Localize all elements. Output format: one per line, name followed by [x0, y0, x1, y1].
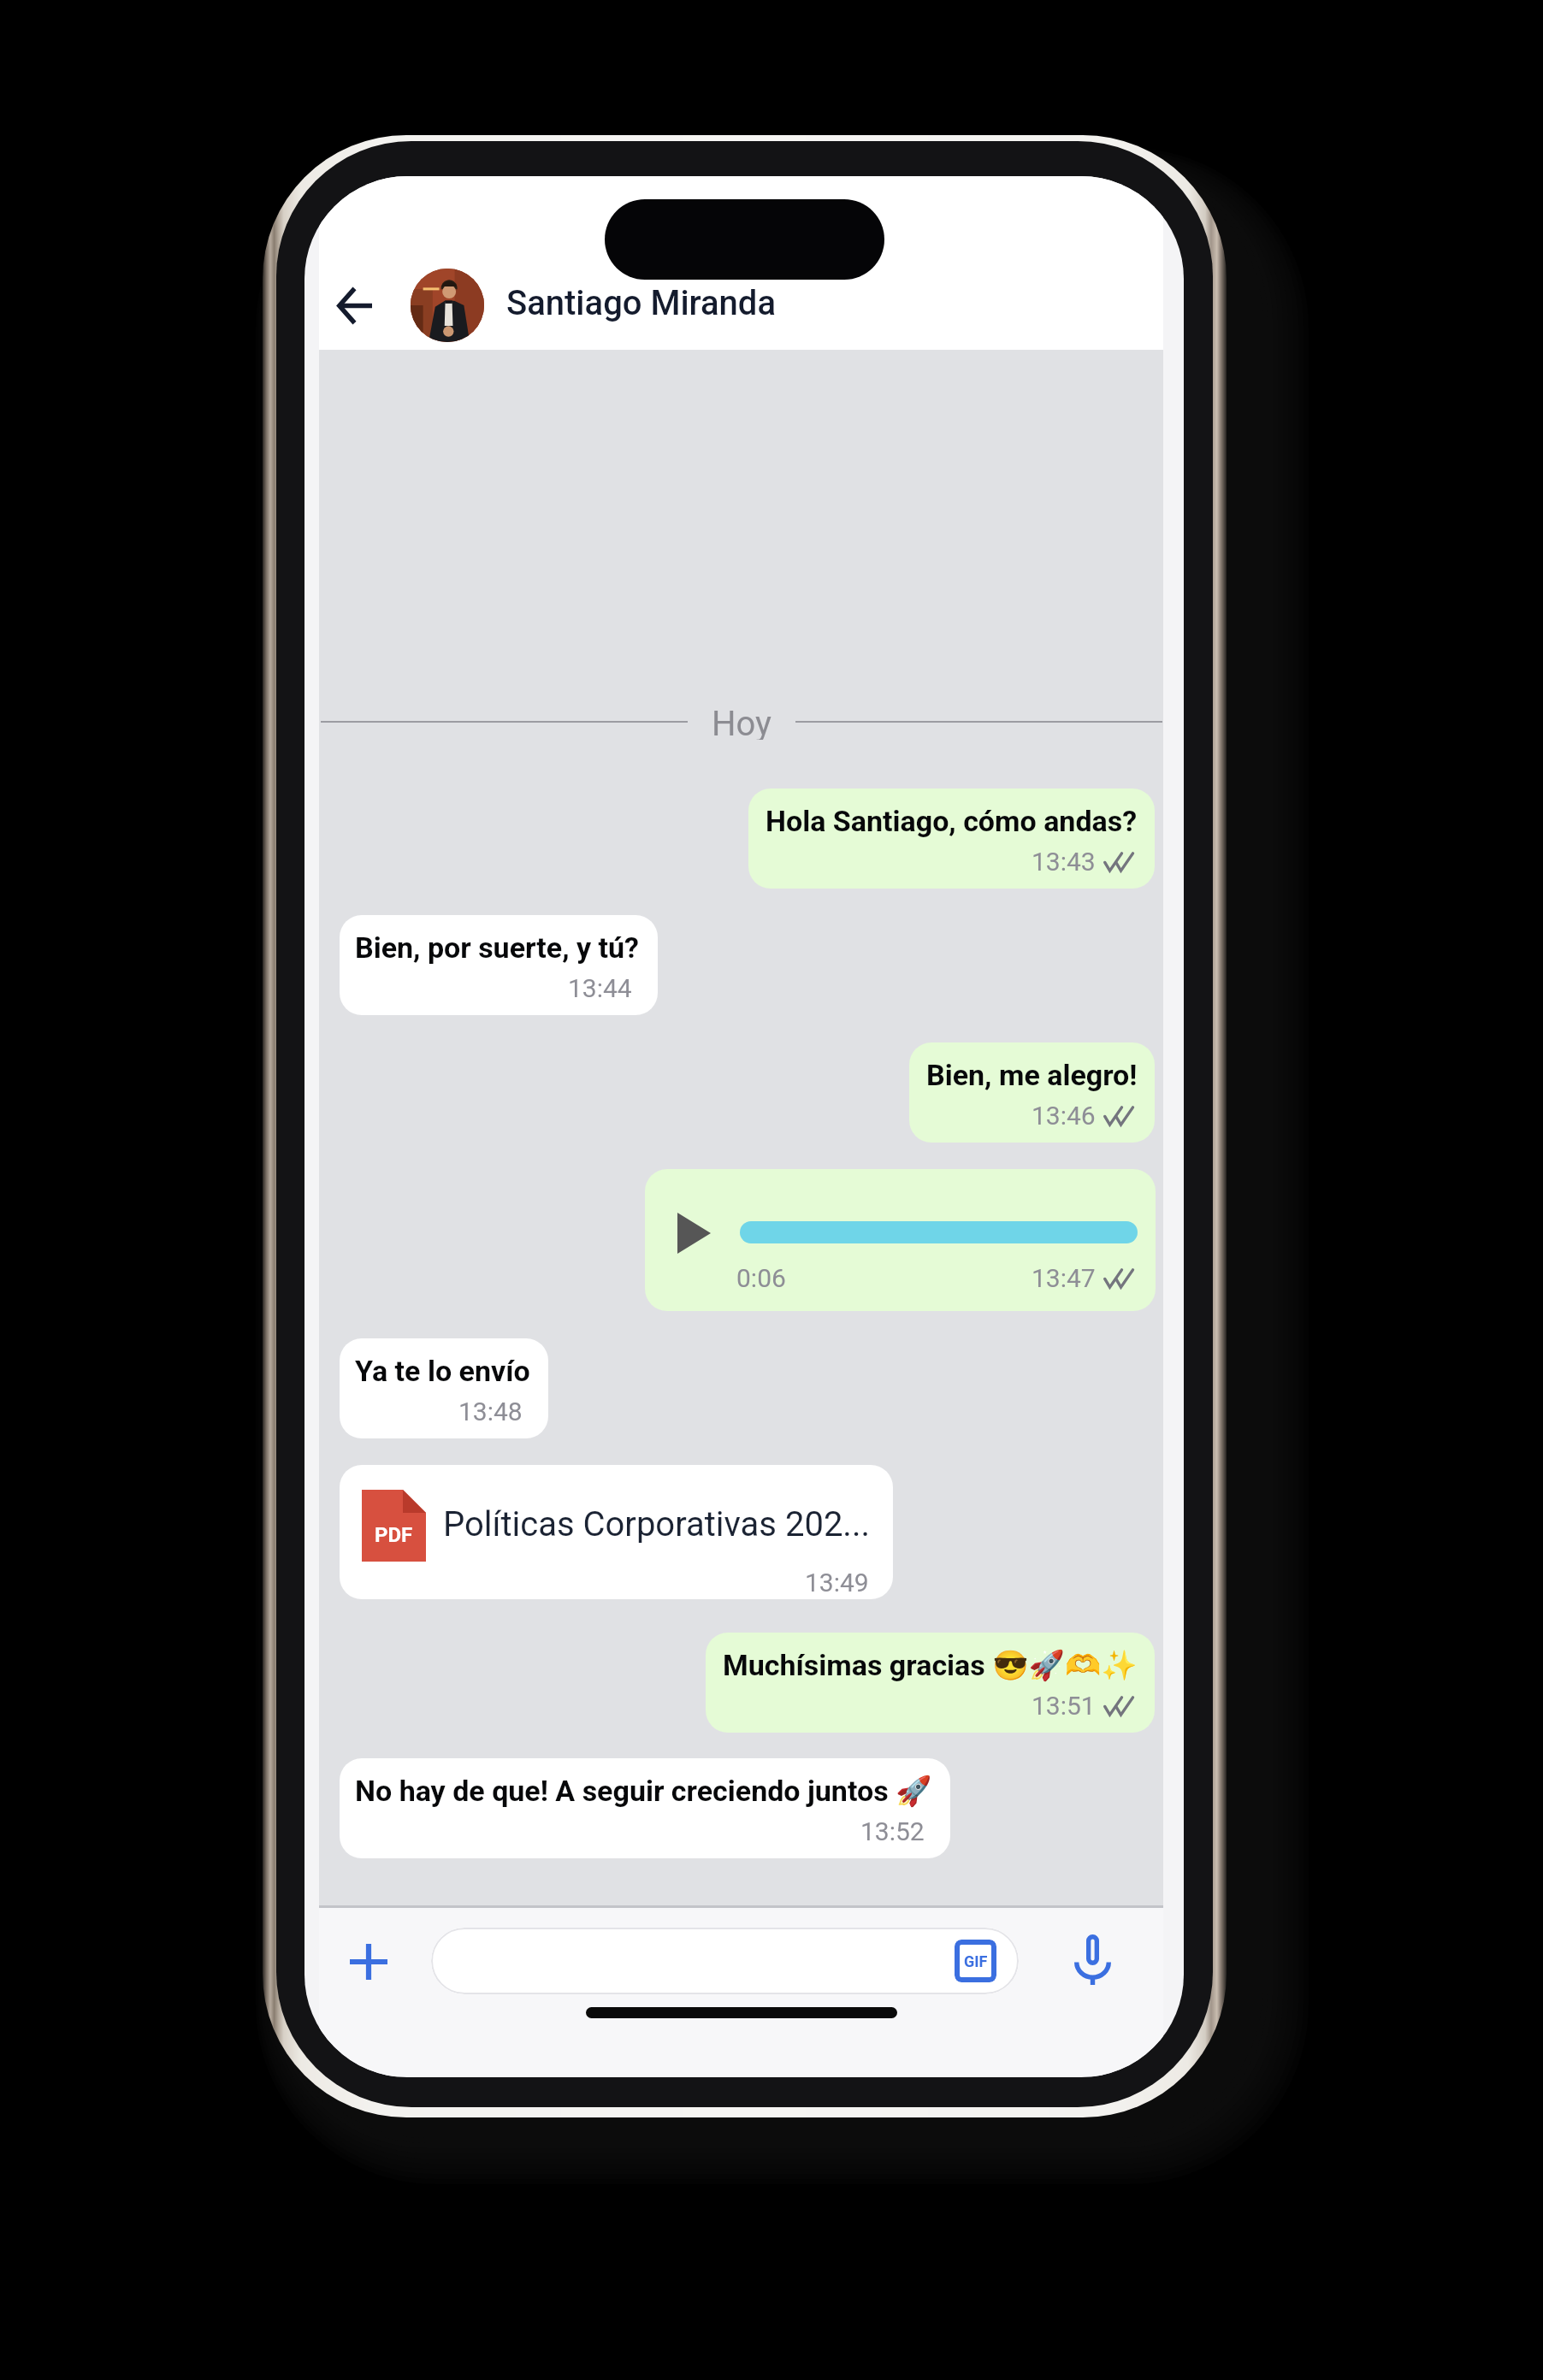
staticText: 13:47 [1032, 1263, 1096, 1293]
staticText: PDF [375, 1523, 413, 1547]
button[interactable]: PDF [340, 1465, 893, 1599]
button[interactable]: Attach [326, 1919, 411, 2005]
button[interactable]: Muchísimas gracias 😎🚀🫶✨ [706, 1633, 1155, 1733]
staticText: Hoy [712, 704, 771, 740]
staticText: Hola Santiago, cómo andas? [766, 804, 1138, 838]
staticText: Bien, por suerte, y tú? [355, 930, 640, 965]
staticText: 13:52 [860, 1816, 925, 1846]
button[interactable]: Hola Santiago, cómo andas? [748, 788, 1155, 889]
button[interactable]: Bien, por suerte, y tú? [340, 915, 658, 1015]
staticText: 13:44 [568, 973, 632, 1003]
staticText: 0:06 [736, 1263, 786, 1293]
staticText: Santiago Miranda [506, 283, 776, 323]
button[interactable]: Play voice message [645, 1169, 1156, 1311]
staticText: 13:46 [1032, 1101, 1096, 1131]
button[interactable]: Play voice message [653, 1192, 732, 1274]
staticText: GIF [964, 1952, 988, 1970]
staticText: 13:43 [1032, 847, 1096, 877]
staticText: Muchísimas gracias 😎🚀🫶✨ [723, 1648, 1138, 1682]
staticText: 13:48 [458, 1397, 523, 1426]
staticText: Ya te lo envío [355, 1354, 530, 1388]
staticText: Políticas Corporativas 202... [443, 1504, 871, 1544]
button[interactable]: GIF [431, 1928, 1019, 1994]
button[interactable]: Ya te lo envío [340, 1338, 548, 1438]
button[interactable]: Voice message [1067, 1926, 1118, 1993]
staticText: Bien, me alegro! [926, 1058, 1138, 1092]
staticText: 13:49 [805, 1568, 869, 1597]
staticText: 13:51 [1032, 1691, 1096, 1721]
staticText: No hay de que! A seguir creciendo juntos… [355, 1774, 932, 1808]
button[interactable]: No hay de que! A seguir creciendo juntos… [340, 1758, 950, 1858]
button[interactable]: Bien, me alegro! [909, 1042, 1155, 1143]
button[interactable]: Back [310, 261, 399, 350]
button[interactable]: Santiago Miranda [403, 258, 793, 352]
